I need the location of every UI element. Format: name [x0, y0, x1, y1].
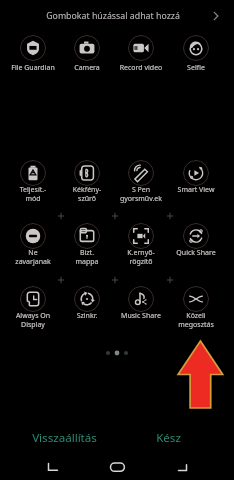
- staticText: File Guardian: [6, 63, 60, 73]
- button[interactable]: Képernyőrögzítő: [128, 223, 154, 249]
- staticText: Selfie: [169, 63, 223, 73]
- staticText: Quick Share: [169, 248, 223, 258]
- button[interactable]: Tovább: [206, 6, 226, 26]
- staticText: Ne zavarjanak: [6, 248, 60, 266]
- staticText: Teljesít.- mód: [6, 185, 60, 203]
- button[interactable]: Biztonságos mappa: [74, 223, 100, 249]
- staticText: Smart View: [169, 185, 223, 195]
- staticText: S Pen gyorsműv.ek: [114, 185, 168, 203]
- staticText: Közeli megosztás: [169, 311, 223, 329]
- button[interactable]: Ne zavarjanak: [20, 223, 46, 249]
- button[interactable]: File Guardian: [20, 35, 46, 61]
- button[interactable]: Smart View: [183, 160, 209, 186]
- button[interactable]: Szinkronizálás: [74, 286, 100, 312]
- button[interactable]: S Pen gyorsműveletek: [128, 160, 154, 186]
- staticText: Bizt. mappa: [60, 248, 114, 266]
- staticText: Camera: [60, 63, 114, 73]
- staticText: K.ernyő- rögzítő: [114, 248, 168, 266]
- button[interactable]: Selfie: [183, 35, 209, 61]
- button[interactable]: Always On Display: [20, 286, 46, 312]
- staticText: Always On Display: [6, 311, 60, 329]
- staticText: Kész: [156, 430, 181, 446]
- button[interactable]: Record video: [128, 35, 154, 61]
- button[interactable]: Kész: [129, 425, 208, 451]
- button[interactable]: Teljesítmény mód: [20, 160, 46, 186]
- button[interactable]: Camera: [74, 35, 100, 61]
- button[interactable]: Kékfényszűrő: [74, 160, 100, 186]
- button[interactable]: Közeli megosztás: [183, 286, 209, 312]
- button[interactable]: Visszaállítás: [14, 425, 115, 451]
- button[interactable]: Quick Share: [183, 223, 209, 249]
- button[interactable]: Recents: [34, 452, 71, 480]
- button[interactable]: Home: [99, 452, 136, 480]
- staticText: Visszaállítás: [32, 430, 97, 446]
- staticText: Kékfény- szűrő: [60, 185, 114, 203]
- staticText: Gombokat húzással adhat hozzá: [40, 10, 186, 22]
- staticText: Record video: [114, 63, 168, 73]
- staticText: Szinkr.: [60, 311, 114, 321]
- button[interactable]: Back: [164, 452, 201, 480]
- staticText: Music Share: [114, 311, 168, 321]
- button[interactable]: Music Share: [128, 286, 154, 312]
- button[interactable]: Gombokat húzással adhat hozzá: [40, 6, 186, 26]
